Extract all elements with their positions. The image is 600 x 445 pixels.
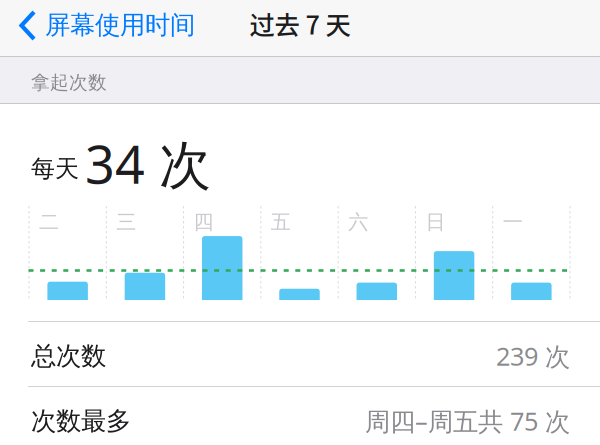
staticText: 周四–周五共 75 次	[365, 404, 570, 438]
staticText: 四	[194, 210, 214, 234]
staticText: 34 次	[85, 129, 211, 198]
staticText: 五	[271, 210, 291, 234]
staticText: 拿起次数	[31, 71, 107, 94]
button[interactable]: 屏幕使用时间	[0, 0, 205, 51]
button[interactable]: 总次数	[0, 321, 600, 386]
staticText: 过去 7 天	[249, 5, 350, 42]
staticText: 239 次	[496, 339, 570, 373]
staticText: 次数最多	[31, 405, 131, 436]
staticText: 日	[425, 210, 445, 234]
staticText: 屏幕使用时间	[45, 9, 195, 40]
staticText: 二	[39, 210, 59, 234]
staticText: 三	[116, 210, 136, 234]
staticText: 一	[503, 210, 523, 234]
button[interactable]: 次数最多	[0, 386, 600, 445]
staticText: 总次数	[31, 340, 106, 371]
staticText: 六	[348, 210, 368, 234]
staticText: 每天	[31, 154, 79, 183]
